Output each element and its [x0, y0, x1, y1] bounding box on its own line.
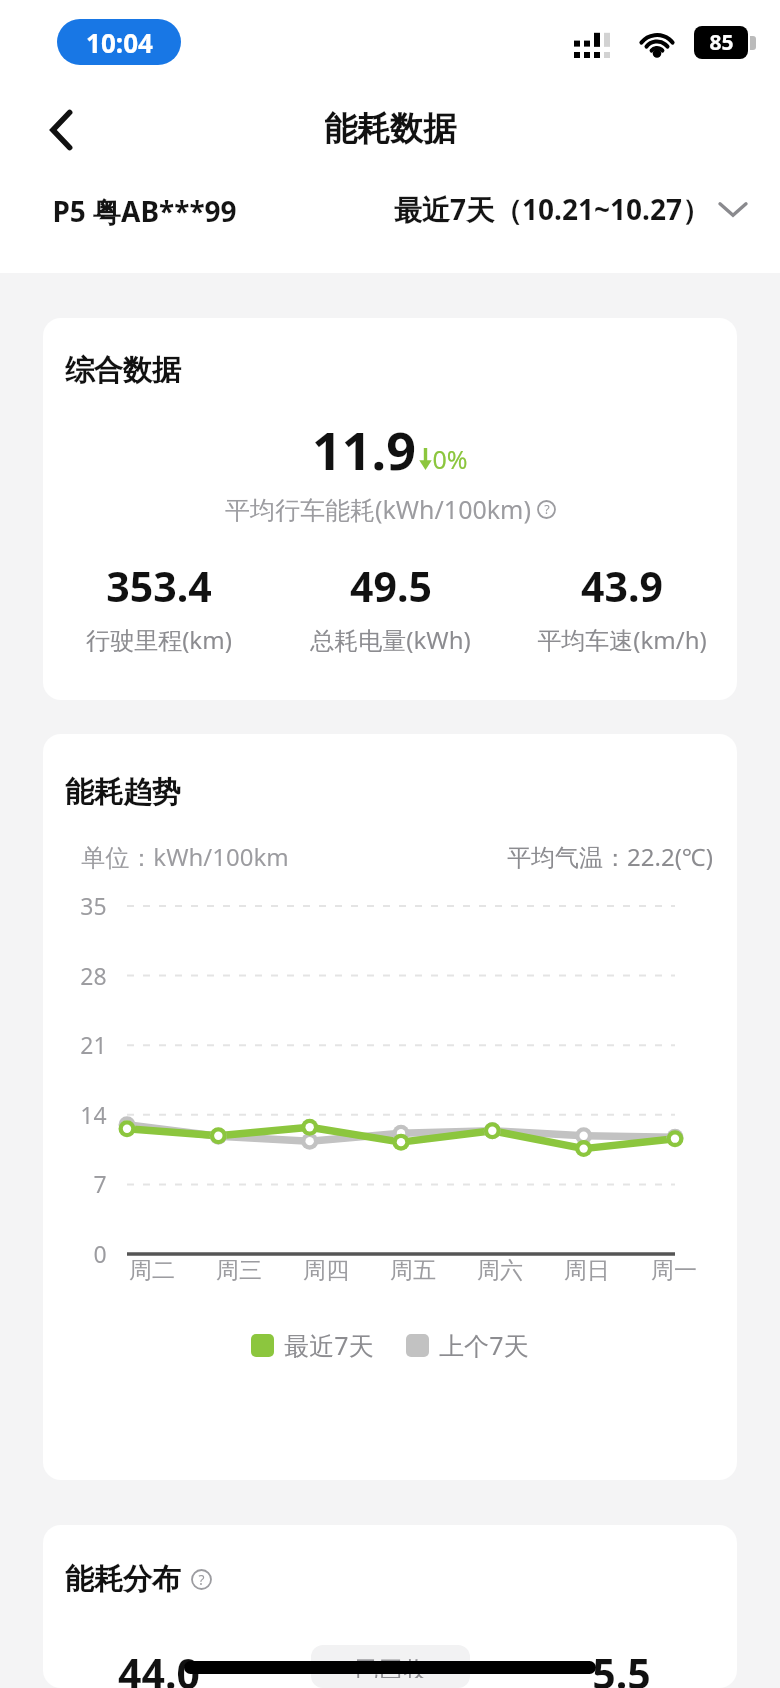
staticText: 周日 — [564, 1256, 610, 1285]
staticText: 能耗趋势 — [65, 774, 181, 811]
staticText: 14 — [80, 1099, 107, 1130]
button[interactable]: 综合数据 — [43, 318, 737, 700]
staticText: 周四 — [303, 1256, 349, 1285]
staticText: 353.4 — [106, 558, 212, 614]
staticText: 43.9 — [581, 558, 663, 614]
button[interactable]: 353.4 — [43, 558, 275, 656]
staticText: ? — [198, 1570, 205, 1589]
staticText: 周二 — [129, 1256, 175, 1285]
button[interactable]: 最近7天 — [251, 1328, 374, 1362]
staticText: 11.9 — [312, 414, 416, 485]
staticText: 85 — [709, 28, 734, 57]
staticText: 最近7天 — [284, 1328, 374, 1362]
staticText: 周六 — [477, 1256, 523, 1285]
staticText: 周五 — [390, 1256, 436, 1285]
staticText: 35 — [80, 890, 107, 921]
staticText: 能耗数据 — [324, 108, 456, 150]
staticText: ? — [544, 501, 550, 518]
staticText: 周一 — [651, 1256, 697, 1285]
staticText: 0% — [432, 442, 468, 476]
button[interactable]: 49.5 — [275, 558, 506, 656]
staticText: 能耗分布 — [65, 1561, 181, 1598]
staticText: 平均行车能耗(kWh/100km) — [225, 492, 531, 526]
button[interactable]: 能耗分布 — [43, 1525, 737, 1688]
staticText: 49.5 — [350, 558, 432, 614]
staticText: 0 — [93, 1238, 107, 1269]
staticText: 44.0 — [118, 1645, 200, 1688]
staticText: 周三 — [216, 1256, 262, 1285]
staticText: 上个7天 — [439, 1328, 529, 1362]
staticText: 5.5 — [592, 1645, 651, 1688]
staticText: 平均车速(km/h) — [537, 623, 707, 656]
staticText: 平均气温：22.2(℃) — [507, 840, 713, 873]
staticText: 综合数据 — [65, 352, 181, 389]
staticText: 21 — [80, 1029, 107, 1060]
staticText: 总耗电量(kWh) — [310, 623, 471, 656]
button[interactable]: 上个7天 — [406, 1328, 529, 1362]
staticText: 单位：kWh/100km — [81, 840, 289, 873]
staticText: 行驶里程(km) — [86, 623, 232, 656]
staticText: 10:04 — [86, 25, 153, 60]
staticText: 28 — [80, 960, 107, 991]
staticText: 7 — [93, 1168, 107, 1199]
button[interactable]: 最近7天（10.21~10.27） — [394, 190, 746, 228]
staticText: P5 粤AB***99 — [52, 192, 237, 230]
staticText: 已回收 — [355, 1655, 427, 1678]
staticText: 最近7天（10.21~10.27） — [394, 190, 710, 228]
button[interactable]: 43.9 — [506, 558, 737, 656]
button[interactable]: Back — [30, 98, 94, 162]
button[interactable]: 能耗趋势 — [43, 734, 737, 1480]
